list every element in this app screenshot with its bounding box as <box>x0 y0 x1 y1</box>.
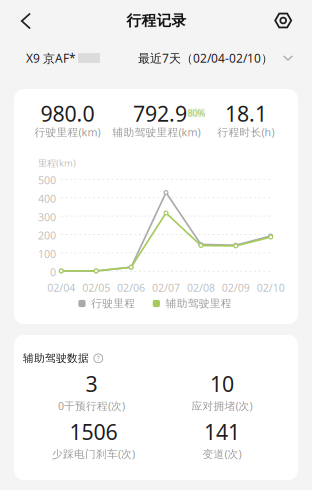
staticText: 3 <box>86 370 98 398</box>
staticText: 行驶里程 <box>91 297 135 310</box>
staticText: 80% <box>187 107 205 119</box>
staticText: 400 <box>38 191 56 206</box>
staticText: 792.9 <box>133 99 187 128</box>
staticText: 少踩电门刹车(次) <box>52 447 135 461</box>
staticText: 行驶里程(km) <box>34 125 100 139</box>
staticText: 141 <box>204 418 240 446</box>
staticText: 0干预行程(次) <box>58 399 125 413</box>
staticText: 变道(次) <box>202 447 241 461</box>
staticText: 02/09 <box>222 280 250 295</box>
staticText: 02/05 <box>82 280 110 295</box>
staticText: X9 京AF* <box>26 50 76 66</box>
button[interactable]: Select vehicle <box>26 48 136 68</box>
staticText: 18.1 <box>225 99 267 128</box>
staticText: 02/10 <box>257 280 285 295</box>
staticText: 里程(km) <box>38 157 76 169</box>
staticText: 02/07 <box>152 280 180 295</box>
staticText: 02/06 <box>117 280 145 295</box>
staticText: 应对拥堵(次) <box>191 399 252 413</box>
staticText: 0 <box>50 265 56 279</box>
staticText: 1506 <box>69 418 117 446</box>
staticText: 500 <box>38 173 56 187</box>
staticText: 100 <box>38 247 56 261</box>
staticText: 300 <box>38 210 56 224</box>
staticText: 行程时长(h) <box>217 125 274 139</box>
staticText: 10 <box>210 370 234 398</box>
staticText: 980.0 <box>40 99 94 128</box>
button[interactable]: Select date range <box>138 47 293 69</box>
staticText: 200 <box>38 228 56 242</box>
staticText: 最近7天（02/04-02/10） <box>138 50 273 66</box>
staticText: 辅助驾驶里程(km) <box>112 125 200 139</box>
staticText: 辅助驾驶里程 <box>166 297 232 310</box>
staticText: 辅助驾驶数据 <box>23 352 89 365</box>
button[interactable]: Back <box>9 3 43 39</box>
staticText: 02/08 <box>187 280 215 295</box>
staticText: 行程记录 <box>126 12 186 30</box>
staticText: 02/04 <box>47 280 75 295</box>
button[interactable]: Settings <box>266 2 300 38</box>
staticText: ? <box>97 354 100 363</box>
